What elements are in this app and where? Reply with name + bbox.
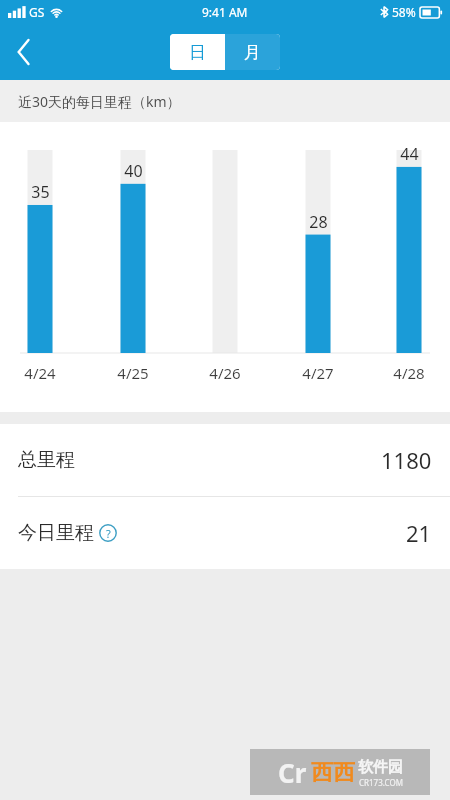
staticText: ?: [106, 526, 111, 541]
button[interactable]: 总里程: [0, 424, 450, 496]
button[interactable]: 今日里程: [0, 497, 450, 569]
staticText: 今日里程: [18, 521, 94, 545]
staticText: 44: [400, 143, 419, 165]
button[interactable]: Back: [0, 28, 48, 76]
staticText: 9:41 AM: [202, 4, 248, 20]
staticText: 35: [31, 181, 50, 203]
staticText: 58%: [392, 4, 416, 20]
staticText: Cr: [278, 755, 307, 790]
staticText: GS: [29, 4, 45, 20]
button[interactable]: 月: [225, 34, 280, 70]
staticText: 总里程: [18, 448, 75, 472]
staticText: 4/25: [117, 363, 149, 383]
button[interactable]: 日: [170, 34, 225, 70]
staticText: 软件园: [358, 758, 403, 777]
staticText: 40: [124, 160, 143, 182]
staticText: 21: [406, 518, 432, 548]
staticText: 月: [244, 42, 261, 63]
staticText: 近30天的每日里程（km）: [18, 92, 181, 111]
staticText: 1180: [381, 445, 432, 475]
staticText: CR173.COM: [359, 777, 403, 788]
button[interactable]: Help: [99, 524, 117, 542]
staticText: 28: [309, 211, 328, 233]
staticText: 日: [189, 42, 206, 63]
staticText: 4/24: [24, 363, 56, 383]
staticText: 4/27: [302, 363, 334, 383]
staticText: 4/26: [209, 363, 241, 383]
staticText: 4/28: [393, 363, 425, 383]
staticText: 西西: [311, 759, 355, 787]
